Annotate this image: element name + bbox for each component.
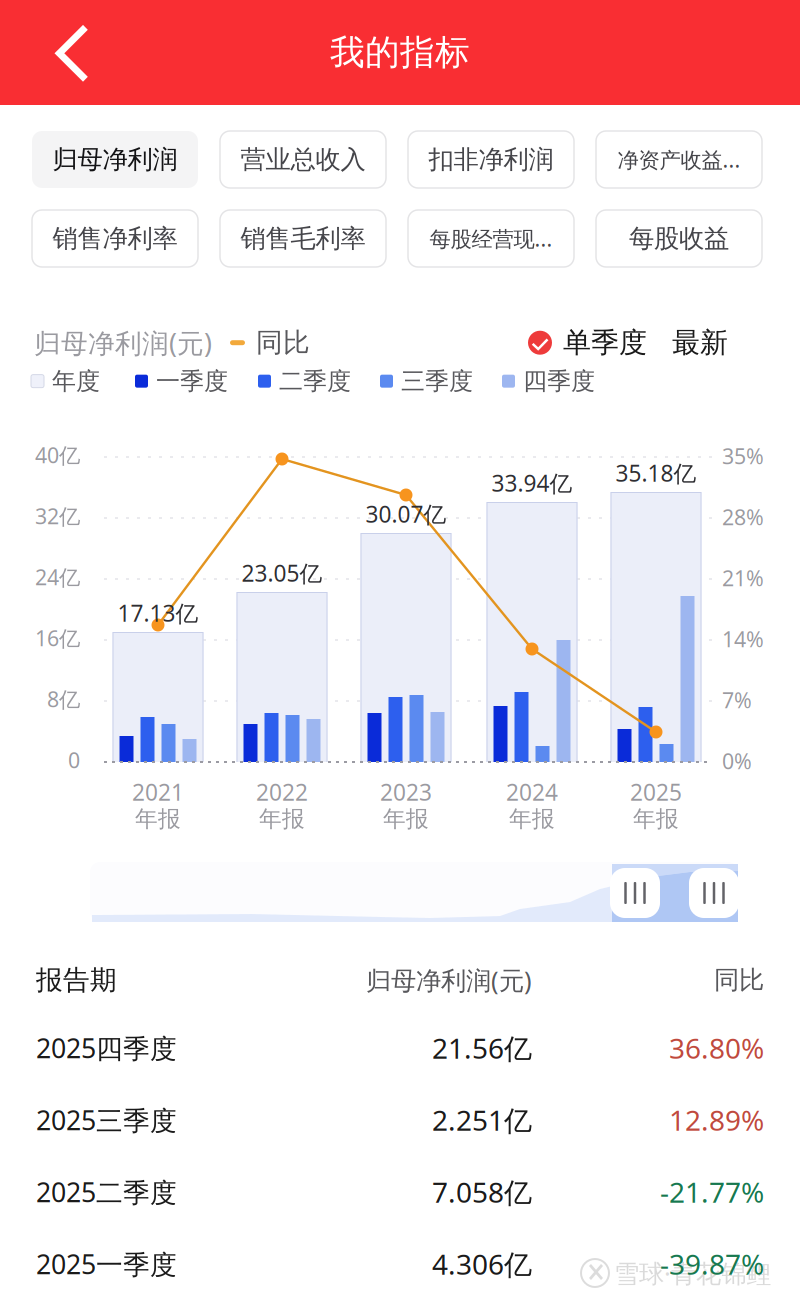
button[interactable]: 单季度 <box>528 325 647 360</box>
staticText: 33.94亿 <box>491 468 572 498</box>
staticText: 雪球·青花锦鲤 <box>614 1256 771 1290</box>
button[interactable]: 销售毛利率 <box>220 210 386 267</box>
staticText: 2024 <box>506 777 558 807</box>
staticText: -39.87% <box>660 1245 764 1283</box>
staticText: -21.77% <box>660 1173 764 1211</box>
staticText: 21.56亿 <box>432 1029 532 1067</box>
staticText: 7.058亿 <box>432 1173 532 1211</box>
staticText: 2025二季度 <box>36 1174 177 1210</box>
staticText: 销售毛利率 <box>240 223 365 254</box>
staticText: 30.07亿 <box>365 499 446 529</box>
staticText: 36.80% <box>669 1029 764 1067</box>
staticText: 年报 <box>135 805 181 833</box>
button[interactable]: 归母净利润 <box>32 131 198 188</box>
staticText: 17.13亿 <box>117 598 198 628</box>
staticText: 2025三季度 <box>36 1102 177 1138</box>
staticText: 同比 <box>256 326 310 359</box>
staticText: 销售净利率 <box>52 223 177 254</box>
button[interactable]: 最新 <box>647 325 728 360</box>
button[interactable]: 2025三季度 <box>0 1084 800 1156</box>
staticText: 一季度 <box>156 366 228 396</box>
staticText: 2023 <box>380 777 432 807</box>
button[interactable]: 销售净利率 <box>32 210 198 267</box>
button[interactable]: Range handle <box>610 868 660 918</box>
staticText: 归母净利润 <box>52 144 177 175</box>
staticText: 最新 <box>672 325 728 360</box>
staticText: 二季度 <box>279 366 351 396</box>
staticText: 35.18亿 <box>615 458 696 488</box>
staticText: 4.306亿 <box>432 1245 532 1283</box>
staticText: 8亿 <box>47 685 80 713</box>
staticText: 16亿 <box>35 624 80 652</box>
staticText: 14% <box>722 625 764 653</box>
staticText: 40亿 <box>35 441 80 469</box>
staticText: 23.05亿 <box>241 558 322 588</box>
staticText: 每股经营现... <box>429 224 552 253</box>
button[interactable]: 2025四季度 <box>0 1012 800 1084</box>
staticText: 扣非净利润 <box>428 144 553 175</box>
button[interactable]: 净资产收益... <box>596 131 762 188</box>
staticText: 净资产收益... <box>617 145 740 174</box>
button[interactable]: 每股经营现... <box>408 210 574 267</box>
button[interactable]: 2025一季度 <box>0 1228 800 1299</box>
staticText: 营业总收入 <box>240 144 365 175</box>
button[interactable]: Back <box>38 24 108 96</box>
staticText: 2022 <box>256 777 308 807</box>
staticText: 2021 <box>132 777 184 807</box>
staticText: 7% <box>722 686 752 714</box>
staticText: 2025一季度 <box>36 1246 177 1282</box>
button[interactable]: 每股收益 <box>596 210 762 267</box>
staticText: 报告期 <box>36 964 117 996</box>
staticText: 28% <box>722 503 764 531</box>
staticText: 2.251亿 <box>432 1101 532 1139</box>
staticText: 年报 <box>383 805 429 833</box>
staticText: 年报 <box>633 805 679 833</box>
button[interactable]: 营业总收入 <box>220 131 386 188</box>
staticText: 24亿 <box>35 563 80 591</box>
button[interactable]: Range handle <box>689 868 739 918</box>
button[interactable]: 2025二季度 <box>0 1156 800 1228</box>
staticText: 三季度 <box>401 366 473 396</box>
staticText: 归母净利润(元) <box>366 963 532 997</box>
staticText: 21% <box>722 564 764 592</box>
staticText: 32亿 <box>35 502 80 530</box>
staticText: 归母净利润(元) <box>34 325 212 360</box>
staticText: 四季度 <box>523 366 595 396</box>
staticText: 2025 <box>630 777 682 807</box>
staticText: 年报 <box>259 805 305 833</box>
staticText: 单季度 <box>563 325 647 360</box>
staticText: 每股收益 <box>629 223 729 254</box>
staticText: 我的指标 <box>330 31 470 74</box>
staticText: 同比 <box>714 964 764 995</box>
staticText: 年报 <box>509 805 555 833</box>
staticText: 35% <box>722 442 764 470</box>
button[interactable]: 扣非净利润 <box>408 131 574 188</box>
staticText: 0 <box>68 746 80 774</box>
staticText: 0% <box>722 747 752 775</box>
staticText: 年度 <box>52 366 100 396</box>
staticText: 12.89% <box>669 1101 764 1139</box>
staticText: 2025四季度 <box>36 1030 177 1066</box>
